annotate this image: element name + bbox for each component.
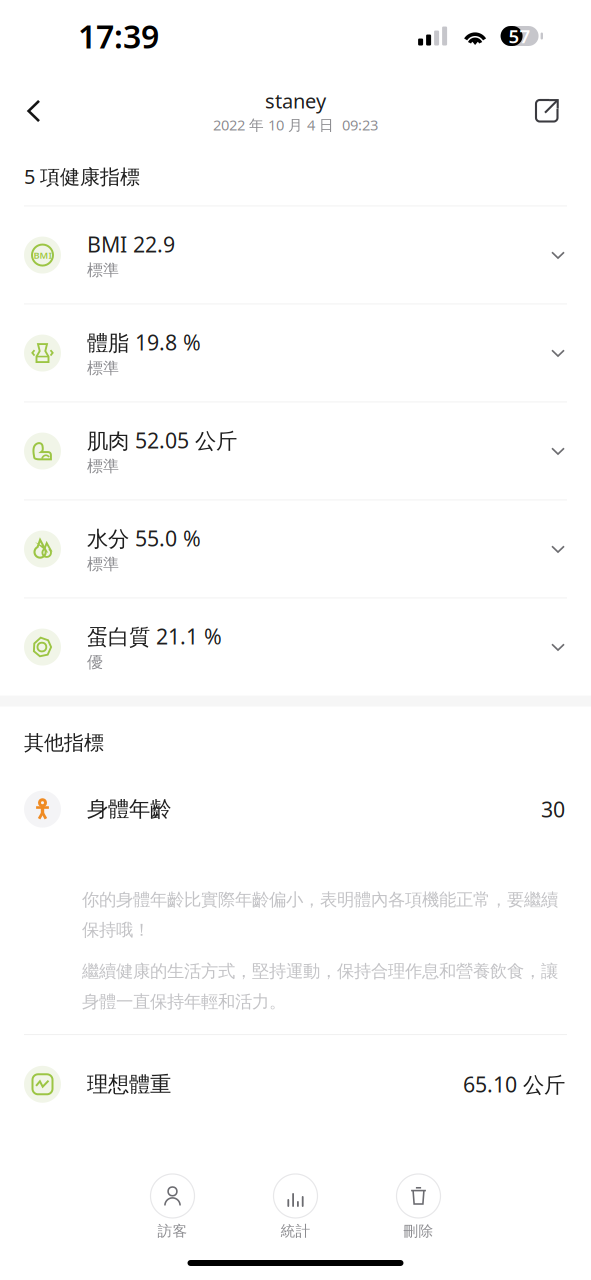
staticText: 肌肉 52.05 公斤 [87,426,237,454]
staticText: 刪除 [403,1222,433,1240]
staticText: 5 項健康指標 [24,163,140,190]
staticText: 17:39 [78,15,159,57]
button[interactable]: 蛋白質 21.1 % [0,599,591,696]
button[interactable]: 統計 [243,1174,347,1240]
staticText: 統計 [280,1222,310,1240]
staticText: staney [265,87,326,114]
staticText: BMI 22.9 [87,230,175,258]
button[interactable]: 肌肉 52.05 公斤 [0,403,591,500]
staticText: 57 [509,24,531,48]
staticText: 其他指標 [24,731,104,755]
button[interactable]: 身體年齡 [0,773,591,845]
button[interactable]: 理想體重 [0,1035,591,1133]
staticText: BMI [33,249,51,261]
staticText: 標準 [87,358,119,378]
staticText: 標準 [87,554,119,574]
staticText: 蛋白質 21.1 % [87,622,222,650]
staticText: 標準 [87,456,119,476]
button[interactable]: Back [6,83,62,139]
staticText: 繼續健康的生活方式，堅持運動，保持合理作息和營養飲食，讓身體一直保持年輕和活力。 [82,961,558,1012]
staticText: 訪客 [157,1222,187,1240]
button[interactable]: BMI [0,207,591,304]
staticText: 優 [87,652,103,672]
staticText: 體脂 19.8 % [87,328,201,356]
staticText: 理想體重 [87,1071,171,1097]
staticText: 水分 55.0 % [87,524,201,552]
button[interactable]: 訪客 [120,1174,224,1240]
button[interactable]: 刪除 [366,1174,470,1240]
staticText: 30 [541,795,565,823]
staticText: 65.10 公斤 [463,1070,565,1098]
button[interactable]: Share [519,83,575,139]
button[interactable]: 水分 55.0 % [0,501,591,598]
staticText: 標準 [87,260,119,280]
staticText: 2022 年 10 月 4 日 09:23 [213,115,378,134]
staticText: 身體年齡 [87,796,171,822]
staticText: 你的身體年齡比實際年齡偏小，表明體內各項機能正常，要繼續保持哦！ [82,889,558,941]
button[interactable]: 體脂 19.8 % [0,305,591,402]
